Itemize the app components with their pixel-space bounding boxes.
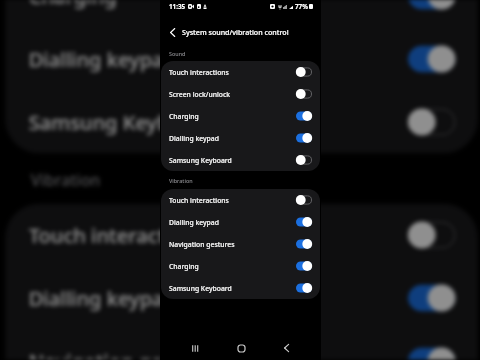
staticText: Dialling keypad [29,45,177,72]
button[interactable]: Dialling keypad [5,266,478,329]
staticText: Touch interactions [169,68,229,77]
button[interactable]: Recent apps [184,337,206,359]
staticText: 11:35 [169,2,186,11]
button[interactable]: Charging [5,0,478,27]
staticText: Touch interactions [169,196,229,205]
staticText: Dialling keypad [29,284,177,311]
button[interactable]: Dialling keypad [161,127,320,149]
button[interactable]: Touch interactions [161,61,320,83]
button[interactable]: Navigation gestures [5,329,478,360]
button[interactable]: Back [275,337,297,359]
staticText: Charging [169,112,199,121]
button[interactable]: Samsung Keyboard [161,277,320,299]
staticText: Navigation gestures [169,240,235,249]
staticText: Charging [169,262,199,271]
staticText: Samsung Keyboard [169,156,232,165]
staticText: Screen lock/unlock [169,90,231,99]
button[interactable]: Dialling keypad [5,27,478,90]
staticText: Dialling keypad [169,218,219,227]
button[interactable]: Navigation gestures [161,233,320,255]
staticText: System sound/vibration control [182,27,289,37]
button[interactable]: Touch interactions [161,189,320,211]
button[interactable]: Home [230,337,252,359]
staticText: Navigation gestures [29,347,223,360]
staticText: Sound [169,50,186,57]
button[interactable]: Samsung Keyboard [161,149,320,171]
staticText: Vibration [169,177,193,184]
staticText: Charging [29,0,117,9]
staticText: Vibration [31,168,101,189]
staticText: Touch interactions [29,221,205,248]
button[interactable]: Charging [161,105,320,127]
button[interactable]: Screen lock/unlock [161,83,320,105]
button[interactable]: Charging [161,255,320,277]
button[interactable]: Dialling keypad [161,211,320,233]
button[interactable]: Touch interactions [5,203,478,266]
button[interactable]: Navigate up [167,27,178,38]
staticText: 77% [295,2,308,11]
staticText: Samsung Keyboard [169,284,232,293]
staticText: Samsung Keyboard [29,108,215,135]
staticText: Dialling keypad [169,134,219,143]
button[interactable]: Samsung Keyboard [5,90,478,153]
